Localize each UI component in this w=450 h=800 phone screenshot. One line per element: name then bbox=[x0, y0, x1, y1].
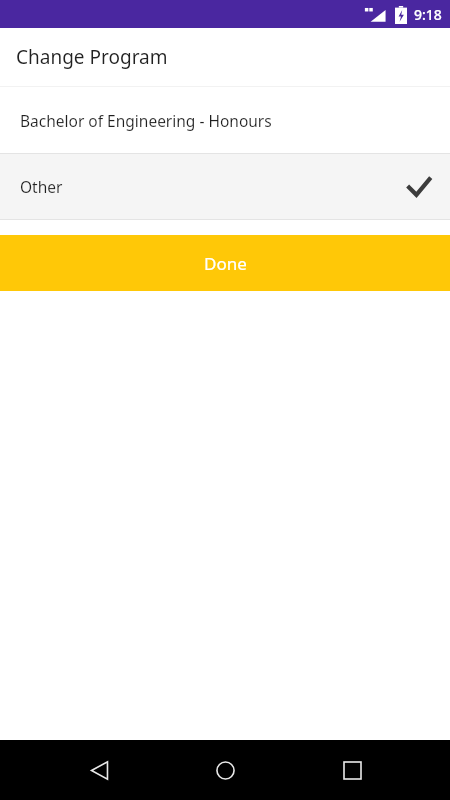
staticText: Change Program bbox=[16, 44, 168, 70]
staticText: Bachelor of Engineering - Honours bbox=[20, 110, 432, 131]
button[interactable]: Bachelor of Engineering - Honours bbox=[0, 87, 450, 153]
staticText: Other bbox=[20, 176, 406, 197]
button[interactable]: Done bbox=[0, 235, 450, 291]
staticText: Done bbox=[204, 252, 247, 275]
staticText: 9:18 bbox=[414, 5, 442, 24]
button[interactable]: Recent apps bbox=[324, 742, 380, 798]
button[interactable]: Home bbox=[197, 742, 253, 798]
button[interactable]: Back bbox=[71, 742, 127, 798]
button[interactable]: Other bbox=[0, 154, 450, 219]
